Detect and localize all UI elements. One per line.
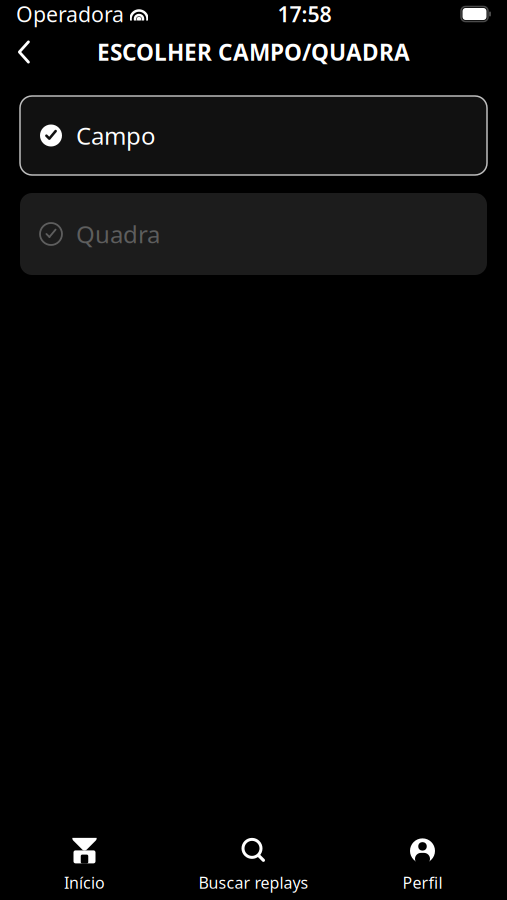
button[interactable]: Voltar (0, 30, 48, 74)
staticText: Quadra (76, 218, 160, 250)
staticText: Perfil (402, 872, 442, 893)
staticText: 17:58 (277, 0, 331, 28)
button[interactable]: Início (0, 838, 169, 892)
button[interactable]: Buscar replays (169, 838, 338, 892)
button[interactable]: Campo (20, 96, 487, 175)
button[interactable]: Perfil (338, 838, 507, 892)
staticText: Campo (76, 120, 156, 151)
staticText: Início (64, 872, 105, 893)
staticText: ESCOLHER CAMPO/QUADRA (97, 37, 410, 67)
button[interactable]: Quadra (20, 193, 487, 275)
staticText: Operadora (16, 0, 124, 28)
staticText: Buscar replays (198, 872, 308, 893)
